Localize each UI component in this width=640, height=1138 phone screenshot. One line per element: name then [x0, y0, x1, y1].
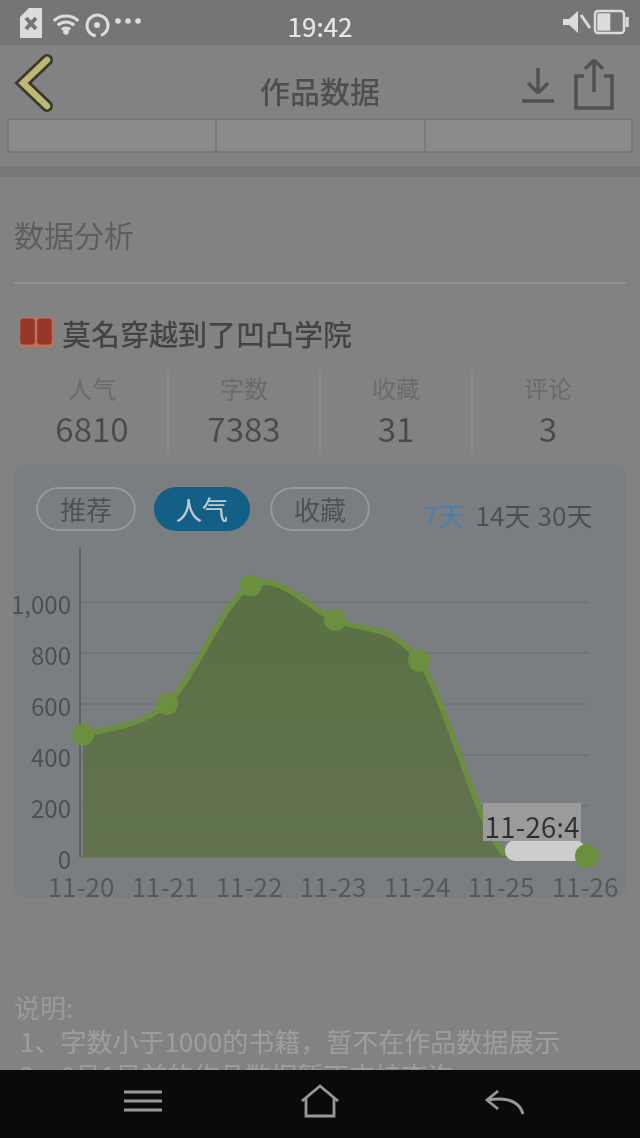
staticText: 数据分析	[14, 212, 214, 255]
staticText: 11-23	[291, 867, 375, 905]
staticText: 11-26	[543, 867, 627, 905]
staticText: 6810	[16, 404, 168, 452]
button[interactable]	[115, 1078, 171, 1128]
staticText: 1,000	[0, 586, 71, 621]
staticText: 31	[320, 404, 472, 452]
staticText: 说明:	[14, 988, 134, 1026]
staticText: 莫名穿越到了凹凸学院	[62, 312, 382, 354]
staticText: 2、8月1日前的作品数据暂不支持查询	[20, 1056, 620, 1094]
staticText: 收藏	[320, 370, 472, 405]
button[interactable]	[293, 1078, 349, 1128]
staticText: 0	[0, 841, 71, 876]
staticText: 作品数据	[220, 68, 420, 111]
button[interactable]: 人气	[154, 487, 250, 531]
staticText: 1、字数小于1000的书籍，暂不在作品数据展示	[20, 1022, 620, 1060]
staticText: 11-22	[207, 867, 291, 905]
staticText: 11-24	[375, 867, 459, 905]
button[interactable]: 推荐	[36, 487, 136, 531]
staticText: 人气	[176, 490, 229, 528]
button[interactable]	[14, 305, 626, 360]
staticText: 800	[0, 637, 71, 672]
button[interactable]	[478, 1078, 534, 1128]
staticText: 7383	[168, 404, 320, 452]
staticText: 3	[472, 404, 624, 452]
staticText: 11-25	[459, 867, 543, 905]
staticText: 400	[0, 739, 71, 774]
staticText: 收藏	[294, 490, 347, 528]
button[interactable]: 14天	[475, 496, 531, 534]
staticText: 11-20	[39, 867, 123, 905]
button[interactable]	[568, 56, 620, 112]
staticText: 11-21	[123, 867, 207, 905]
staticText: 字数	[168, 370, 320, 405]
staticText: 评论	[472, 370, 624, 405]
staticText: 200	[0, 790, 71, 825]
button[interactable]: 30天	[537, 496, 593, 534]
staticText: 600	[0, 688, 71, 723]
button[interactable]: 收藏	[270, 487, 370, 531]
button[interactable]	[512, 60, 564, 112]
button[interactable]	[12, 52, 62, 118]
staticText: 人气	[16, 370, 168, 405]
staticText: 19:42	[270, 7, 370, 45]
staticText: 11-26:4	[483, 806, 581, 847]
button[interactable]: 7天	[419, 496, 469, 534]
staticText: 推荐	[60, 490, 113, 528]
